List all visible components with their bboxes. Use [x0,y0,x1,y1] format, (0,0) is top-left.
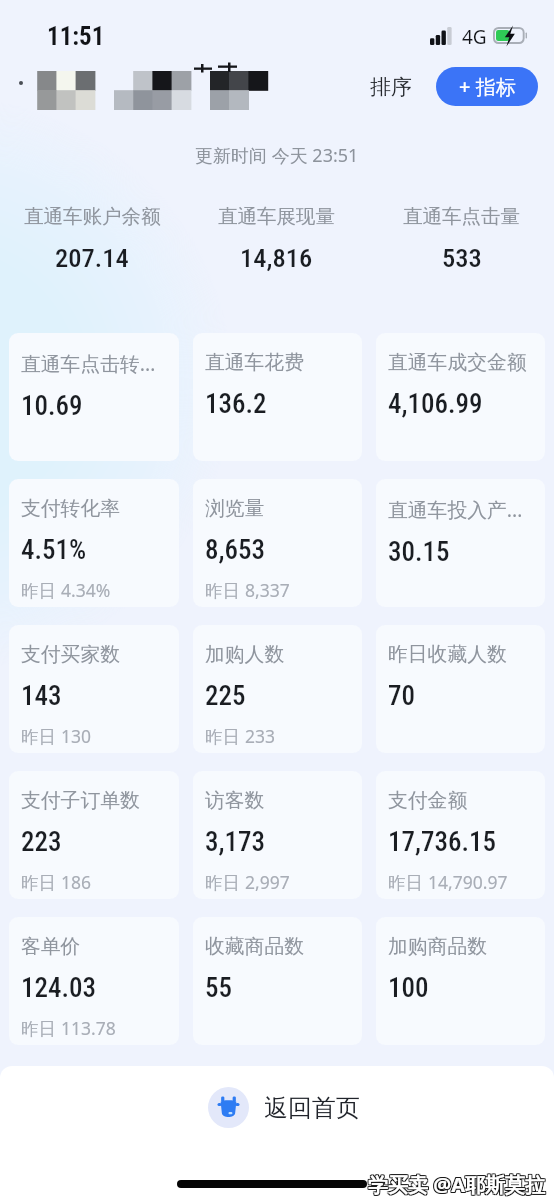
staticText: 学买卖 @A耶斯莫拉 [369,1171,546,1198]
button[interactable]: + 指标 [436,67,538,106]
staticText: 排序 [370,74,412,100]
staticText: 14,816 [240,242,313,273]
button[interactable]: 直通车点击量 [369,204,554,273]
staticText: 支付转化率 [21,496,120,521]
button[interactable]: 昨日收藏人数 [376,625,545,753]
staticText: 225 [205,680,246,712]
staticText: 昨日 [388,870,428,894]
other: Account name [18,71,274,113]
staticText: 昨日 [21,724,61,748]
staticText: 233 [245,724,276,748]
staticText: 加购商品数 [388,934,487,959]
button[interactable]: 直通车账户余额 [0,204,184,273]
staticText: 8,653 [205,534,266,566]
staticText: 客单价 [21,934,81,959]
staticText: 返回首页 [264,1093,360,1123]
staticText: 130 [61,724,92,748]
staticText: 学买卖 @A耶斯莫拉 [367,1172,544,1199]
staticText: 学买卖 @A耶斯莫拉 [368,1171,545,1198]
staticText: 收藏商品数 [205,934,304,959]
staticText: 学买卖 @A耶斯莫拉 [368,1172,545,1199]
staticText: 直通车花费 [205,350,304,375]
staticText: 30.15 [388,536,450,568]
staticText: 支付子订单数 [21,788,140,813]
staticText: 学买卖 @A耶斯莫拉 [367,1170,544,1197]
button[interactable]: 直通车成交金额 [376,333,545,461]
staticText: + 指标 [459,73,516,100]
staticText: 207.14 [55,242,129,273]
button[interactable]: 支付转化率 [9,479,179,607]
staticText: 4.51% [21,534,87,566]
staticText: 昨日 [205,870,245,894]
button[interactable]: 访客数 [193,771,362,899]
staticText: 支付金额 [388,788,468,813]
staticText: 学买卖 @A耶斯莫拉 [368,1170,545,1197]
staticText: 2,997 [245,870,290,894]
staticText: 533 [442,242,482,273]
button[interactable]: 支付子订单数 [9,771,179,899]
staticText: 113.78 [61,1016,116,1040]
staticText: 3,173 [205,826,266,858]
button[interactable]: 直通车投入产… [376,479,545,607]
staticText: 支付买家数 [21,642,120,667]
button[interactable]: 直通车点击转… [9,333,179,461]
staticText: 直通车点击量 [403,204,520,229]
staticText: 直通车展现量 [218,204,335,229]
staticText: 直通车账户余额 [24,204,161,229]
button[interactable]: 浏览量 [193,479,362,607]
staticText: 更新时间 今天 23:51 [195,143,359,168]
staticText: 136.2 [205,388,267,420]
staticText: 直通车点击转… [21,350,156,377]
staticText: 昨日 [21,578,61,602]
button[interactable]: 直通车展现量 [184,204,369,273]
staticText: 186 [61,870,92,894]
staticText: 加购人数 [205,642,285,667]
staticText: 直通车投入产… [388,496,523,523]
staticText: 昨日收藏人数 [388,642,507,667]
button[interactable]: 收藏商品数 [193,917,362,1045]
staticText: 8,337 [245,578,290,602]
button[interactable]: 支付买家数 [9,625,179,753]
staticText: 55 [205,972,232,1004]
staticText: 143 [21,680,62,712]
staticText: 学买卖 @A耶斯莫拉 [369,1170,546,1197]
staticText: 11:51 [47,22,105,51]
staticText: 100 [388,972,429,1004]
staticText: 4,106.99 [388,388,483,420]
button[interactable]: 排序 [364,68,418,106]
staticText: 10.69 [21,390,83,422]
staticText: 昨日 [205,724,245,748]
staticText: 124.03 [21,972,97,1004]
staticText: 17,736.15 [388,826,497,858]
staticText: 70 [388,680,415,712]
button[interactable]: 直通车花费 [193,333,362,461]
staticText: 学买卖 @A耶斯莫拉 [367,1171,544,1198]
staticText: 14,790.97 [428,870,508,894]
staticText: 昨日 [205,578,245,602]
staticText: 访客数 [205,788,265,813]
button[interactable]: 支付金额 [376,771,545,899]
staticText: 4G [462,24,487,50]
staticText: 223 [21,826,62,858]
button[interactable]: 返回首页 [202,1085,366,1130]
staticText: 浏览量 [205,496,265,521]
staticText: 学买卖 @A耶斯莫拉 [369,1172,546,1199]
staticText: 直通车成交金额 [388,350,527,375]
staticText: 昨日 [21,1016,61,1040]
staticText: 4.34% [61,578,111,602]
button[interactable]: 加购人数 [193,625,362,753]
button[interactable]: 客单价 [9,917,179,1045]
button[interactable]: 加购商品数 [376,917,545,1045]
staticText: 昨日 [21,870,61,894]
